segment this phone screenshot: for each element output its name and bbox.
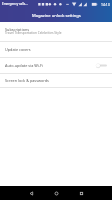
staticText: Subscriptions xyxy=(5,27,30,32)
button[interactable]: Back xyxy=(19,186,43,200)
button[interactable]: Screen lock & passwords xyxy=(0,74,112,87)
staticText: Auto-update via Wi-Fi xyxy=(5,63,44,68)
staticText: Update covers xyxy=(5,47,31,52)
button[interactable]: Home xyxy=(43,186,69,200)
staticText: Magazine unlock settings xyxy=(32,13,81,19)
staticText: Travel Transportation Celebrities Style xyxy=(5,31,62,35)
staticText: 14:13 xyxy=(101,2,110,7)
button[interactable]: Recents xyxy=(69,186,93,200)
staticText: Emergency calls... xyxy=(2,2,28,6)
button[interactable]: Update covers xyxy=(0,42,112,57)
staticText: Screen lock & passwords xyxy=(5,78,49,83)
button[interactable]: Auto-update via Wi-Fi xyxy=(0,58,112,73)
button[interactable]: Subscriptions xyxy=(0,22,112,41)
